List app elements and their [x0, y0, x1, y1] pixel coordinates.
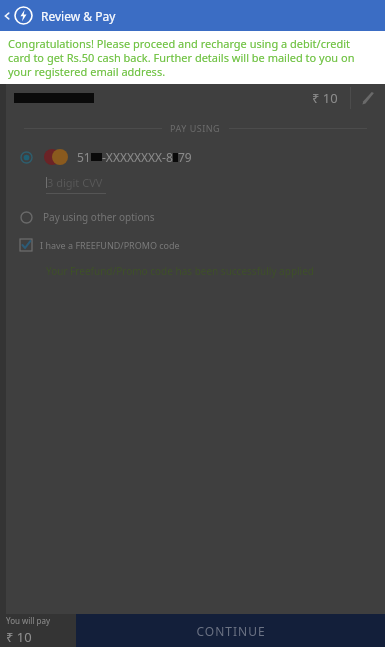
button[interactable]: CONTINUE — [76, 614, 385, 647]
staticText: -XXXXXXXX-8 — [102, 149, 173, 165]
button[interactable]: 51 — [6, 144, 385, 170]
staticText: 79 — [178, 149, 192, 165]
button[interactable]: Pay using other options — [6, 206, 385, 228]
staticText: 51 — [77, 149, 91, 165]
button[interactable]: ₹ 10 — [6, 84, 385, 112]
button[interactable]: Edit amount — [351, 84, 385, 112]
staticText: 3 digit CVV — [47, 175, 103, 190]
button[interactable]: Back — [0, 0, 14, 31]
staticText: ₹ 10 — [6, 628, 32, 646]
button[interactable]: I have a FREEFUND/PROMO code — [6, 234, 385, 256]
staticText: Review & Pay — [41, 8, 116, 24]
staticText: You will pay — [6, 615, 51, 626]
staticText: Pay using other options — [43, 210, 155, 224]
button[interactable]: 3 digit CVV — [6, 170, 385, 198]
staticText: Your Freefund/Promo code has been succes… — [46, 264, 373, 278]
staticText: ₹ 10 — [312, 89, 338, 107]
staticText: I have a FREEFUND/PROMO code — [40, 239, 180, 251]
staticText: CONTINUE — [196, 623, 266, 639]
staticText: PAY USING — [170, 122, 221, 134]
staticText: Congratulations! Please proceed and rech… — [8, 36, 375, 79]
